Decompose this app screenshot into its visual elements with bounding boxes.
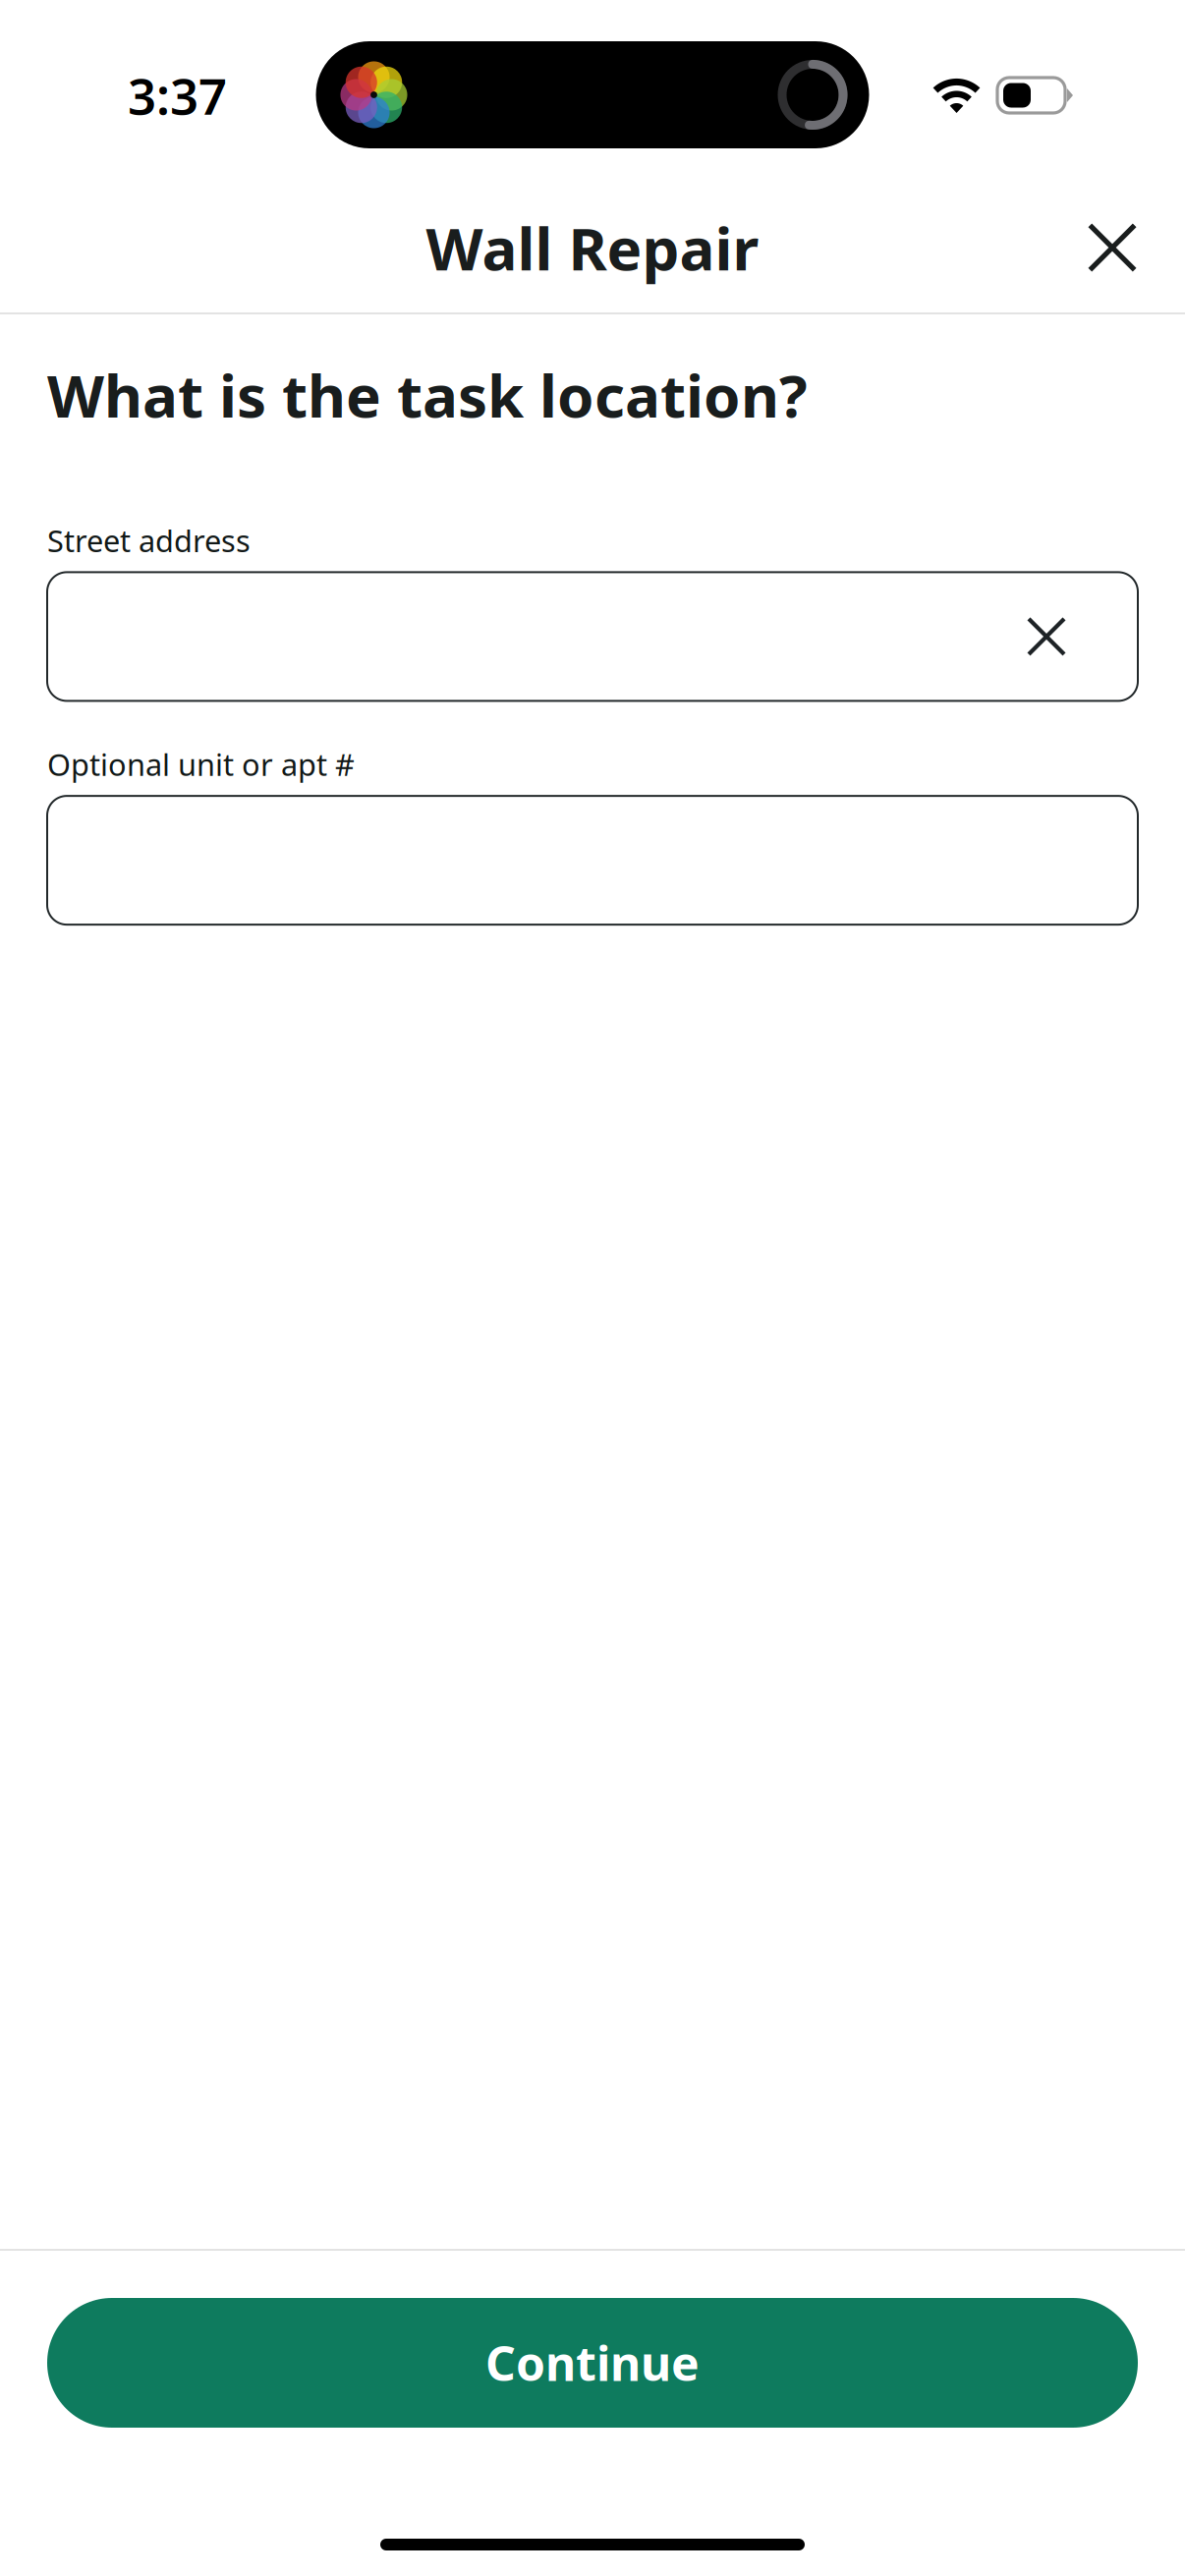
button[interactable]: Optional unit or apt # <box>47 796 1138 925</box>
staticText: Continue <box>485 2331 700 2394</box>
staticText: What is the task location? <box>47 356 808 434</box>
staticText: Street address <box>47 520 251 560</box>
button[interactable]: Close <box>1057 193 1167 303</box>
button[interactable]: Street address <box>47 572 1138 701</box>
staticText: Optional unit or apt # <box>47 744 355 784</box>
button[interactable]: Continue <box>47 2298 1138 2428</box>
button[interactable]: Clear text <box>1000 590 1093 683</box>
staticText: Wall Repair <box>426 208 759 287</box>
staticText: 3:37 <box>128 62 227 128</box>
